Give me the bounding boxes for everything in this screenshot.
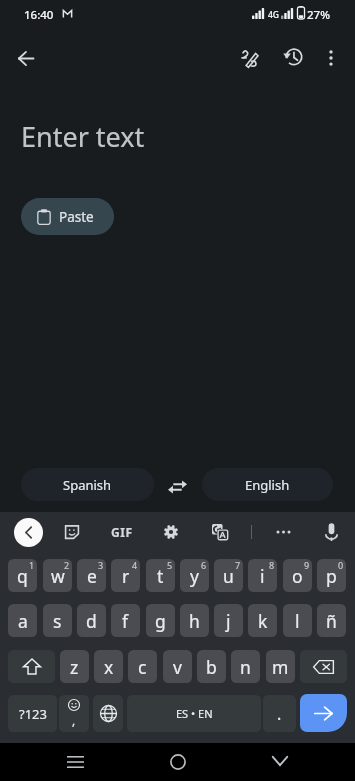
button[interactable]: f [111, 604, 140, 637]
staticText: 5 [167, 559, 173, 571]
button[interactable]: a [8, 604, 37, 637]
button[interactable]: . [263, 695, 296, 732]
staticText: d [86, 609, 97, 633]
button[interactable]: Swap languages [159, 470, 196, 503]
staticText: i [260, 564, 265, 588]
staticText: w [51, 564, 65, 588]
button[interactable]: ?123 [8, 695, 57, 732]
button[interactable]: k [248, 604, 277, 637]
staticText: 16:40 [24, 7, 54, 23]
staticText: ES • EN [176, 706, 213, 721]
staticText: ?123 [19, 705, 47, 723]
button[interactable]: Spanish [21, 468, 154, 501]
staticText: m [272, 655, 289, 679]
staticText: English [245, 476, 290, 494]
button[interactable]: t [146, 559, 175, 592]
button[interactable]: Translate [208, 520, 232, 544]
staticText: e [87, 564, 97, 588]
staticText: v [173, 655, 182, 679]
button[interactable]: Change language [93, 695, 123, 732]
button[interactable]: b [197, 650, 226, 683]
button[interactable]: g [146, 604, 175, 637]
staticText: Spanish [63, 476, 112, 494]
staticText: a [18, 609, 28, 633]
staticText: , [72, 712, 76, 728]
staticText: 1 [29, 559, 35, 571]
button[interactable]: h [180, 604, 209, 637]
button[interactable]: z [60, 650, 89, 683]
staticText: p [326, 564, 337, 588]
button[interactable]: Shift [8, 650, 55, 683]
button[interactable]: m [266, 650, 295, 683]
staticText: z [70, 655, 79, 679]
staticText: o [292, 564, 303, 588]
staticText: 0 [338, 559, 344, 571]
button[interactable]: History [270, 35, 314, 79]
button[interactable]: Emoji [59, 695, 89, 732]
button[interactable]: More options [309, 36, 353, 80]
button[interactable]: Settings [159, 520, 183, 544]
staticText: 8 [269, 559, 275, 571]
staticText: y [190, 564, 199, 588]
button[interactable]: Recents [57, 744, 93, 780]
button[interactable]: Hide keyboard [262, 743, 298, 779]
staticText: c [138, 655, 147, 679]
staticText: Paste [59, 208, 94, 226]
staticText: ñ [326, 609, 337, 633]
button[interactable]: e [77, 559, 106, 592]
button[interactable]: Improve translation [227, 35, 271, 79]
button[interactable]: x [94, 650, 123, 683]
button[interactable]: Back [4, 36, 48, 80]
button[interactable]: l [283, 604, 312, 637]
staticText: 4 [132, 559, 138, 571]
staticText: k [258, 609, 268, 633]
staticText: s [53, 609, 62, 633]
button[interactable]: o [283, 559, 312, 592]
staticText: j [226, 609, 231, 633]
button[interactable]: Enter [300, 694, 347, 732]
staticText: q [17, 564, 28, 588]
staticText: 9 [304, 559, 310, 571]
staticText: 4G [268, 9, 280, 21]
button[interactable]: Home [160, 744, 196, 780]
button[interactable]: q [8, 559, 37, 592]
staticText: h [189, 609, 200, 633]
button[interactable]: u [214, 559, 243, 592]
button[interactable]: GIF [110, 520, 134, 544]
button[interactable]: Expand toolbar [14, 518, 43, 547]
button[interactable]: Paste [21, 198, 114, 235]
staticText: 3 [98, 559, 104, 571]
staticText: u [223, 564, 234, 588]
staticText: 6 [201, 559, 207, 571]
button[interactable]: English [202, 468, 333, 501]
button[interactable]: Voice input [319, 520, 343, 544]
staticText: . [277, 703, 282, 725]
button[interactable]: ES • EN [127, 695, 261, 732]
staticText: 27% [307, 7, 330, 23]
staticText: 7 [235, 559, 241, 571]
button[interactable]: j [214, 604, 243, 637]
button[interactable]: i [248, 559, 277, 592]
staticText: b [206, 655, 217, 679]
button[interactable]: y [180, 559, 209, 592]
button[interactable]: More [271, 520, 295, 544]
button[interactable]: v [163, 650, 192, 683]
button[interactable]: Backspace [300, 650, 347, 683]
staticText: n [240, 655, 251, 679]
staticText: Enter text [21, 118, 145, 155]
button[interactable]: c [128, 650, 157, 683]
staticText: f [122, 609, 129, 633]
staticText: t [157, 564, 164, 588]
button[interactable]: p [317, 559, 346, 592]
button[interactable]: Stickers [60, 520, 84, 544]
button[interactable]: ñ [317, 604, 346, 637]
button[interactable]: n [231, 650, 260, 683]
button[interactable]: d [77, 604, 106, 637]
button[interactable]: w [43, 559, 72, 592]
button[interactable]: s [43, 604, 72, 637]
button[interactable]: r [111, 559, 140, 592]
staticText: 2 [64, 559, 70, 571]
staticText: GIF [111, 524, 133, 540]
staticText: l [295, 609, 300, 633]
staticText: x [104, 655, 114, 679]
